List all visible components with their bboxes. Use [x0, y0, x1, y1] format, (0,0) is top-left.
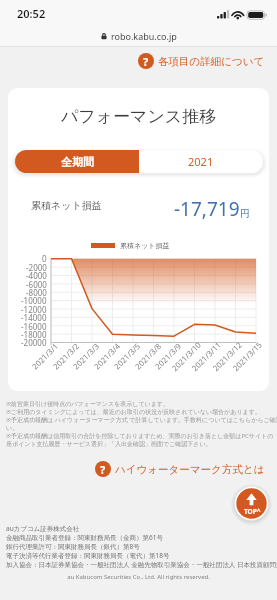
staticText: TOP^ [244, 507, 261, 516]
staticText: -18000 [21, 329, 47, 340]
staticText: -6000 [26, 279, 47, 290]
staticText: 銀行代理業許可：関東財務局長（銀代）第8号 [6, 542, 140, 551]
staticText: 2021/3/9 [153, 341, 184, 372]
staticText: 2021 [188, 154, 214, 169]
button[interactable]: Scroll to top [234, 486, 270, 522]
staticText: -16000 [21, 321, 47, 332]
button[interactable]: 2021 [139, 150, 263, 173]
staticText: 累積ネット損益 [31, 199, 102, 212]
staticText: ハイウォーターマーク方式とは [115, 463, 265, 476]
staticText: 2021/3/15 [231, 339, 265, 374]
button[interactable]: ? [138, 53, 277, 69]
button[interactable]: 全期間 [15, 150, 139, 173]
button[interactable]: robo.kabu.co.jp [100, 30, 177, 42]
staticText: ※ご利用のタイミングによっては、最近のお取引の状況が反映されていない場合がありま… [6, 408, 261, 416]
staticText: robo.kabu.co.jp [111, 30, 177, 42]
staticText: い。 [6, 424, 19, 432]
staticText: -8000 [26, 287, 47, 298]
staticText: auカブコム証券株式会社 [6, 524, 80, 533]
staticText: au Kabucom Securities Co., Ltd. All righ… [0, 573, 277, 581]
staticText: -14000 [21, 312, 47, 323]
staticText: 累積ネット損益 [120, 241, 170, 250]
staticText: ※予定成功報酬は ハイウォーターマーク方式 で計算しています。手数料についてはこ… [6, 416, 277, 424]
staticText: 加入協会：日本証券業協会・一般社団法人 金融先物取引業協会・一般社団法人 日本投… [6, 560, 277, 569]
staticText: 2021/3/1 [30, 341, 61, 372]
staticText: 2021/3/12 [211, 339, 245, 374]
staticText: 0 [42, 253, 47, 264]
staticText: 2021/3/11 [190, 339, 224, 374]
staticText: -12000 [21, 304, 47, 315]
staticText: -20000 [21, 337, 47, 348]
staticText: ※前営業日引け後時点のパフォーマンスを表示しています。 [6, 400, 169, 408]
staticText: 2021/3/3 [71, 341, 102, 372]
staticText: -17,719 [174, 196, 240, 222]
staticText: ※予定成功報酬は信用取引の合計を控除しておりますため、実際のお引き落とし金額はP… [6, 432, 277, 440]
staticText: 2021/3/2 [51, 341, 82, 372]
staticText: ? [100, 462, 106, 477]
staticText: -10000 [21, 295, 47, 306]
staticText: 座ポイント支払履歴・サービス選択」「入出金確認」画面でご確認下さい。 [6, 440, 212, 448]
staticText: 電子決済等代行業者登録：関東財務局長（電代）第18号 [6, 551, 170, 560]
staticText: 全期間 [61, 155, 94, 169]
staticText: 2021/3/4 [92, 341, 123, 372]
staticText: -4000 [26, 270, 47, 281]
staticText: 2021/3/5 [112, 341, 143, 372]
staticText: ? [143, 54, 149, 69]
staticText: 2021/3/8 [133, 341, 164, 372]
button[interactable]: ? [95, 461, 277, 477]
staticText: パフォーマンス推移 [8, 106, 269, 127]
staticText: -2000 [26, 262, 47, 273]
staticText: 20:52 [17, 6, 46, 21]
staticText: 円 [240, 207, 250, 220]
staticText: 2021/3/10 [170, 339, 204, 374]
staticText: 金融商品取引業者登録：関東財務局長（金商）第61号 [6, 533, 163, 542]
staticText: 各項目の詳細について [158, 55, 265, 68]
